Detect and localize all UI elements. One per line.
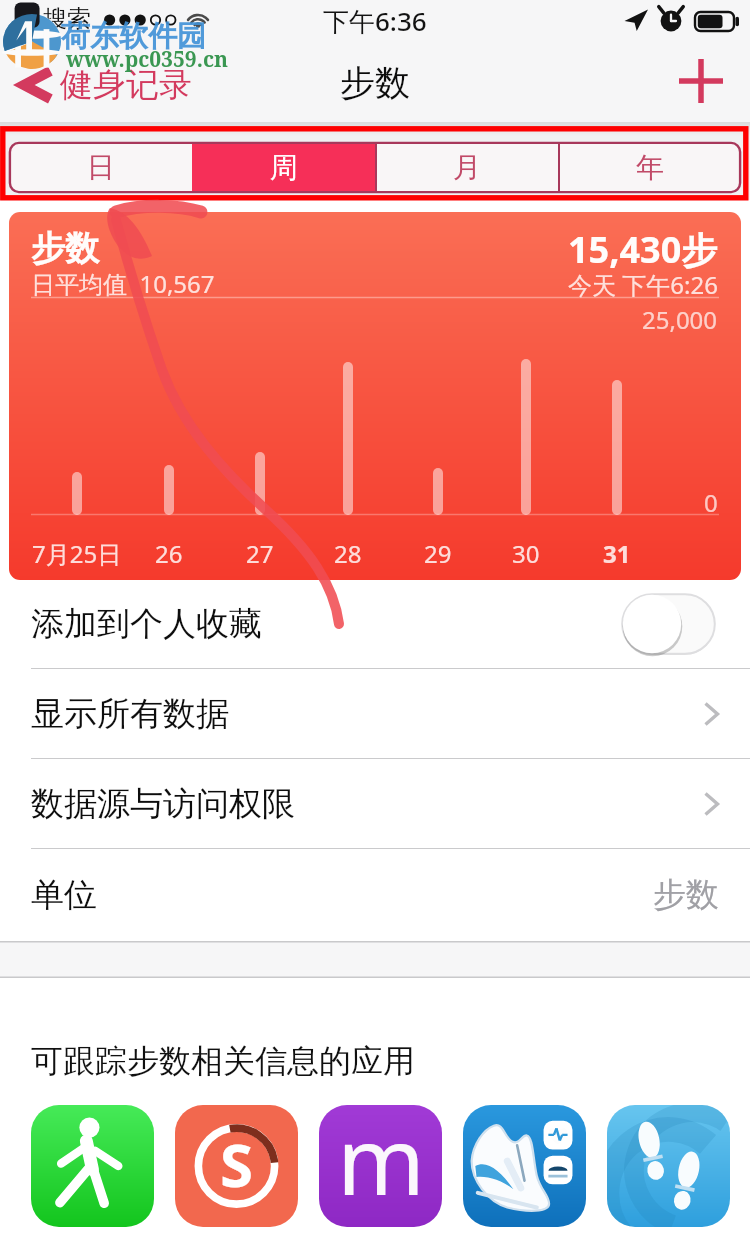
staticText: 日平均值 10,567 (31, 267, 215, 300)
staticText: 健身记录 (60, 64, 192, 106)
staticText: 步数 (31, 227, 99, 270)
staticText: 28 (334, 537, 362, 570)
staticText: 今天 下午6:26 (568, 268, 718, 301)
staticText: www.pc0359.cn (66, 45, 228, 74)
button[interactable]: 健身记录应用 (31, 1105, 154, 1227)
button[interactable]: 添加到个人收藏 (0, 580, 750, 668)
staticText: 25,000 (642, 303, 718, 336)
button[interactable]: 数据源与访问权限 (0, 759, 750, 848)
staticText: 26 (155, 537, 183, 570)
staticText: S (220, 1123, 254, 1205)
staticText: 27 (246, 537, 274, 570)
staticText: 步数 (340, 61, 410, 105)
staticText: 0 (704, 486, 718, 519)
button[interactable]: 跑步记录应用 (463, 1105, 586, 1227)
staticText: 显示所有数据 (31, 693, 229, 735)
staticText: 周 (270, 150, 298, 185)
staticText: 步数 (653, 874, 719, 916)
button[interactable]: 显示所有数据 (0, 669, 750, 758)
staticText: 29 (424, 537, 452, 570)
staticText: 月 (453, 150, 481, 185)
staticText: 荷东软件园 (61, 18, 206, 55)
button[interactable]: 月 (375, 142, 558, 193)
button[interactable]: 年 (558, 142, 741, 193)
button[interactable]: 计步器应用 (607, 1105, 730, 1227)
staticText: m (337, 1105, 425, 1217)
staticText: 可跟踪步数相关信息的应用 (31, 1041, 415, 1081)
button[interactable]: 添加到个人收藏开关 (621, 593, 716, 655)
staticText: 30 (512, 537, 540, 570)
button[interactable]: Moves 应用 (319, 1105, 442, 1227)
staticText: 年 (636, 150, 664, 185)
button[interactable]: 周 (192, 142, 375, 193)
button[interactable]: 单位 (0, 849, 750, 941)
button[interactable]: 日 (9, 142, 192, 193)
staticText: 搜索 (43, 4, 91, 34)
staticText: 下午6:36 (323, 3, 427, 39)
staticText: 15,430步 (568, 225, 718, 274)
staticText: 7月25日 (32, 537, 122, 570)
staticText: 日 (87, 150, 115, 185)
staticText: 数据源与访问权限 (31, 783, 295, 825)
button[interactable]: Sworkit 应用 (175, 1105, 298, 1227)
staticText: 单位 (31, 874, 97, 916)
staticText: 31 (603, 537, 631, 570)
staticText: 添加到个人收藏 (31, 603, 262, 645)
button[interactable]: 添加 (670, 42, 732, 119)
button[interactable]: 健身记录 (6, 45, 204, 122)
